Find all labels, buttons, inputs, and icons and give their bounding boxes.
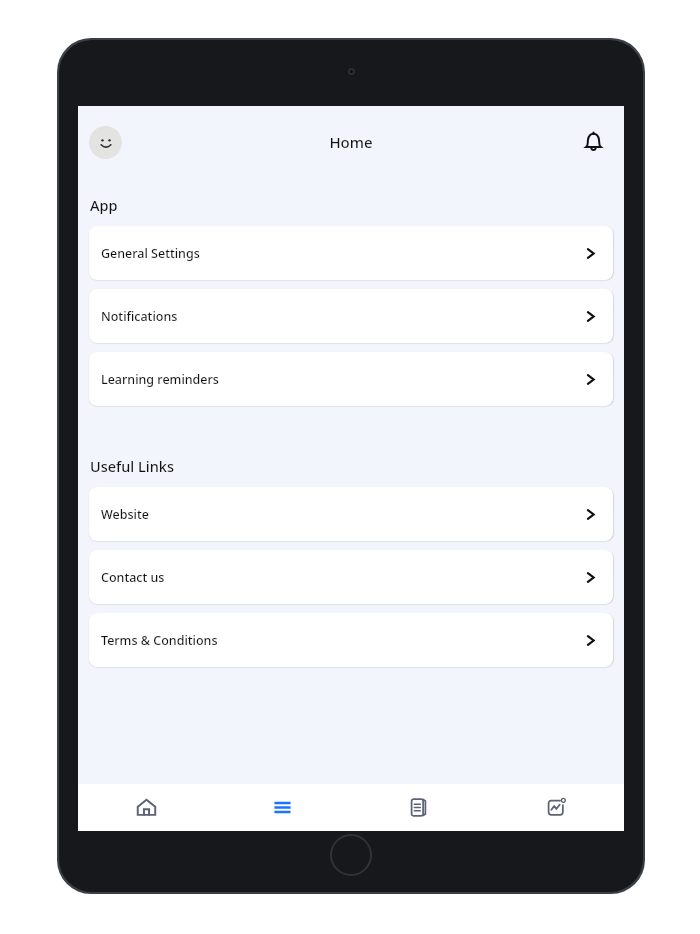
button[interactable]: Progress bbox=[487, 784, 624, 831]
button[interactable]: Learning reminders bbox=[89, 352, 613, 406]
staticText: Useful Links bbox=[90, 456, 174, 476]
button[interactable]: Notifications bbox=[576, 125, 610, 159]
staticText: Terms & Conditions bbox=[101, 632, 218, 649]
button[interactable]: Website bbox=[89, 487, 613, 541]
staticText: Home bbox=[329, 132, 373, 152]
staticText: Learning reminders bbox=[101, 371, 219, 388]
button[interactable]: Menu bbox=[214, 784, 350, 831]
staticText: Contact us bbox=[101, 569, 165, 586]
button[interactable]: Profile bbox=[89, 126, 122, 159]
staticText: Notifications bbox=[101, 308, 178, 325]
button[interactable]: Contact us bbox=[89, 550, 613, 604]
button[interactable]: Home bbox=[78, 784, 214, 831]
staticText: Website bbox=[101, 506, 149, 523]
button[interactable]: Documents bbox=[350, 784, 487, 831]
button[interactable]: Notifications bbox=[89, 289, 613, 343]
staticText: General Settings bbox=[101, 245, 200, 262]
button[interactable]: General Settings bbox=[89, 226, 613, 280]
button[interactable]: Terms & Conditions bbox=[89, 613, 613, 667]
staticText: App bbox=[90, 195, 118, 215]
